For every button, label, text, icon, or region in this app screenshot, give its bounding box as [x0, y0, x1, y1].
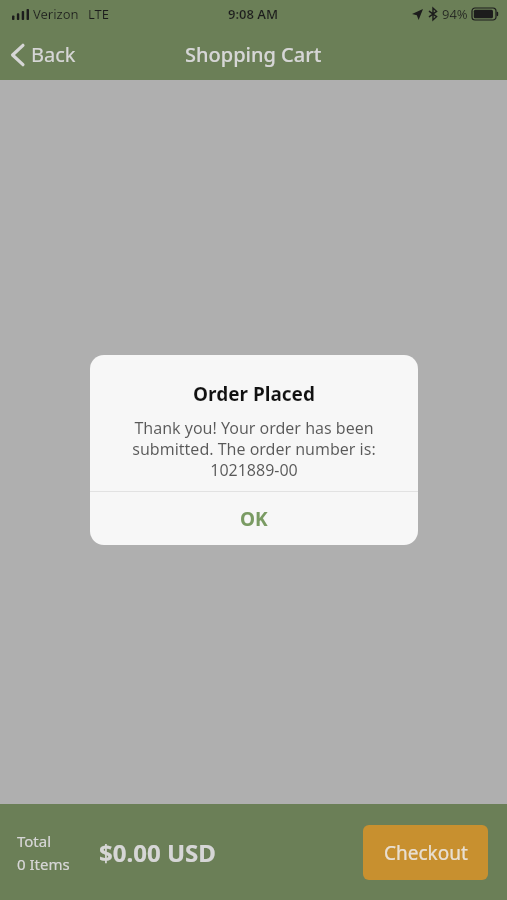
button[interactable]: Back — [0, 35, 88, 74]
staticText: Back — [31, 41, 76, 68]
staticText: OK — [240, 506, 268, 532]
button[interactable]: Checkout — [363, 825, 488, 880]
staticText: 9:08 AM — [228, 5, 279, 23]
staticText: Verizon — [33, 5, 79, 23]
staticText: Total — [17, 831, 52, 851]
staticText: $0.00 USD — [99, 836, 216, 869]
staticText: LTE — [88, 5, 110, 23]
staticText: 0 Items — [17, 854, 70, 874]
staticText: Shopping Cart — [185, 41, 322, 68]
staticText: Thank you! Your order has been submitted… — [108, 417, 400, 481]
staticText: Order Placed — [90, 381, 418, 407]
staticText: Checkout — [384, 840, 468, 866]
button[interactable]: OK — [90, 492, 418, 545]
staticText: 94% — [442, 5, 468, 23]
